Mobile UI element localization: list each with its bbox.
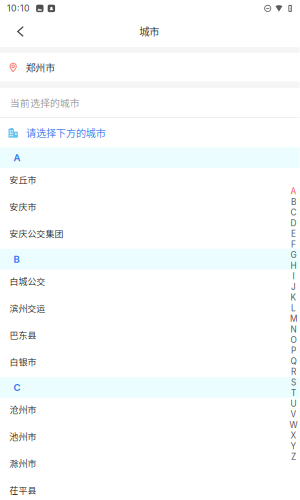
staticText: A — [13, 152, 20, 164]
staticText: B — [291, 197, 296, 207]
staticText: C — [13, 382, 20, 393]
button[interactable]: 茌平县 — [0, 479, 299, 500]
staticText: H — [290, 261, 296, 271]
staticText: V — [290, 409, 296, 419]
button[interactable]: Back — [9, 18, 31, 47]
staticText: 白城公交 — [9, 275, 45, 288]
staticText: M — [290, 314, 297, 324]
staticText: P — [291, 346, 296, 356]
staticText: J — [291, 282, 296, 292]
staticText: 安庆公交集团 — [9, 227, 63, 240]
staticText: 安庆市 — [9, 200, 36, 213]
staticText: 郑州市 — [25, 60, 55, 74]
button[interactable]: 巴东县 — [0, 323, 299, 350]
staticText: R — [291, 367, 296, 377]
staticText: 滨州交运 — [9, 302, 45, 314]
staticText: 池州市 — [9, 430, 36, 443]
button[interactable]: 沧州市 — [0, 398, 299, 425]
staticText: A — [290, 186, 296, 196]
staticText: O — [290, 335, 296, 345]
staticText: E — [291, 229, 296, 239]
button[interactable]: 安庆公交集团 — [0, 222, 299, 249]
button[interactable]: 请选择下方的城市 — [0, 118, 299, 147]
staticText: T — [291, 388, 296, 398]
staticText: L — [291, 303, 296, 313]
staticText: 请选择下方的城市 — [26, 125, 106, 140]
staticText: F — [291, 239, 296, 249]
button[interactable]: 安庆市 — [0, 195, 299, 222]
staticText: B — [13, 253, 19, 265]
staticText: W — [289, 420, 297, 430]
staticText: S — [291, 377, 296, 387]
button[interactable]: 郑州市 — [0, 53, 299, 81]
staticText: U — [290, 399, 296, 409]
staticText: 白银市 — [9, 355, 36, 368]
button[interactable]: 滁州市 — [0, 452, 299, 479]
staticText: G — [290, 250, 296, 260]
button[interactable]: 安丘市 — [0, 168, 299, 195]
staticText: 城市 — [139, 23, 159, 38]
staticText: N — [290, 324, 296, 334]
staticText: 当前选择的城市 — [10, 95, 80, 110]
button[interactable]: 白银市 — [0, 350, 299, 377]
staticText: 安丘市 — [9, 173, 36, 186]
staticText: 10:10 — [7, 3, 30, 14]
staticText: C — [290, 207, 296, 217]
staticText: Z — [291, 452, 296, 462]
button[interactable]: 池州市 — [0, 425, 299, 452]
staticText: D — [290, 218, 296, 228]
button[interactable]: 滨州交运 — [0, 297, 299, 323]
staticText: 巴东县 — [9, 328, 36, 341]
staticText: X — [290, 431, 296, 441]
staticText: K — [290, 292, 296, 302]
button[interactable]: 白城公交 — [0, 270, 299, 297]
staticText: Y — [290, 441, 296, 451]
staticText: 茌平县 — [9, 484, 36, 496]
staticText: 沧州市 — [9, 403, 36, 416]
staticText: 滁州市 — [9, 457, 36, 470]
staticText: Q — [290, 356, 296, 366]
staticText: I — [292, 271, 294, 281]
